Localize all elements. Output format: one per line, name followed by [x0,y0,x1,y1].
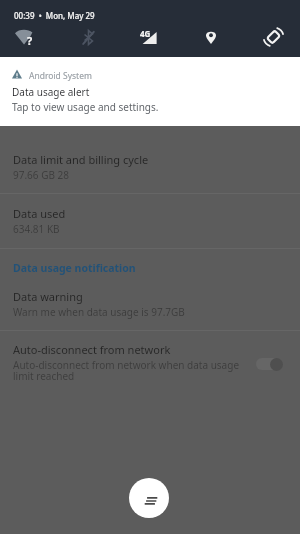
button[interactable]: Auto rotate [255,21,291,53]
button[interactable]: Data used [0,193,300,248]
button[interactable]: Data limit and billing cycle [0,126,300,193]
staticText: Data limit and billing cycle [13,152,149,167]
staticText: Auto-disconnect from network [13,342,171,357]
staticText: Warn me when data usage is 97.7GB [13,305,185,319]
staticText: Data used [13,206,66,221]
staticText: 4G [140,28,151,39]
staticText: Data usage alert [12,85,90,99]
staticText: Data usage notification [13,261,136,275]
staticText: 634.81 KB [13,222,60,236]
button[interactable]: Wi-Fi [8,21,44,53]
button[interactable]: Recents [129,478,169,518]
staticText: Android System [29,70,92,82]
button[interactable]: Data warning [0,281,300,330]
staticText: 00:39 • Mon, May 29 [14,10,95,21]
staticText: ? [27,33,33,48]
button[interactable]: Mobile data [131,21,167,53]
button[interactable]: Location [193,21,229,53]
staticText: 97.66 GB 28 [13,168,69,182]
button[interactable]: Bluetooth [70,21,106,53]
staticText: Auto-disconnect from network when data u… [13,358,240,383]
staticText: Tap to view usage and settings. [12,100,159,114]
button[interactable]: Auto-disconnect from network [0,330,300,392]
staticText: Data warning [13,289,83,304]
button[interactable]: Android System [0,57,300,126]
